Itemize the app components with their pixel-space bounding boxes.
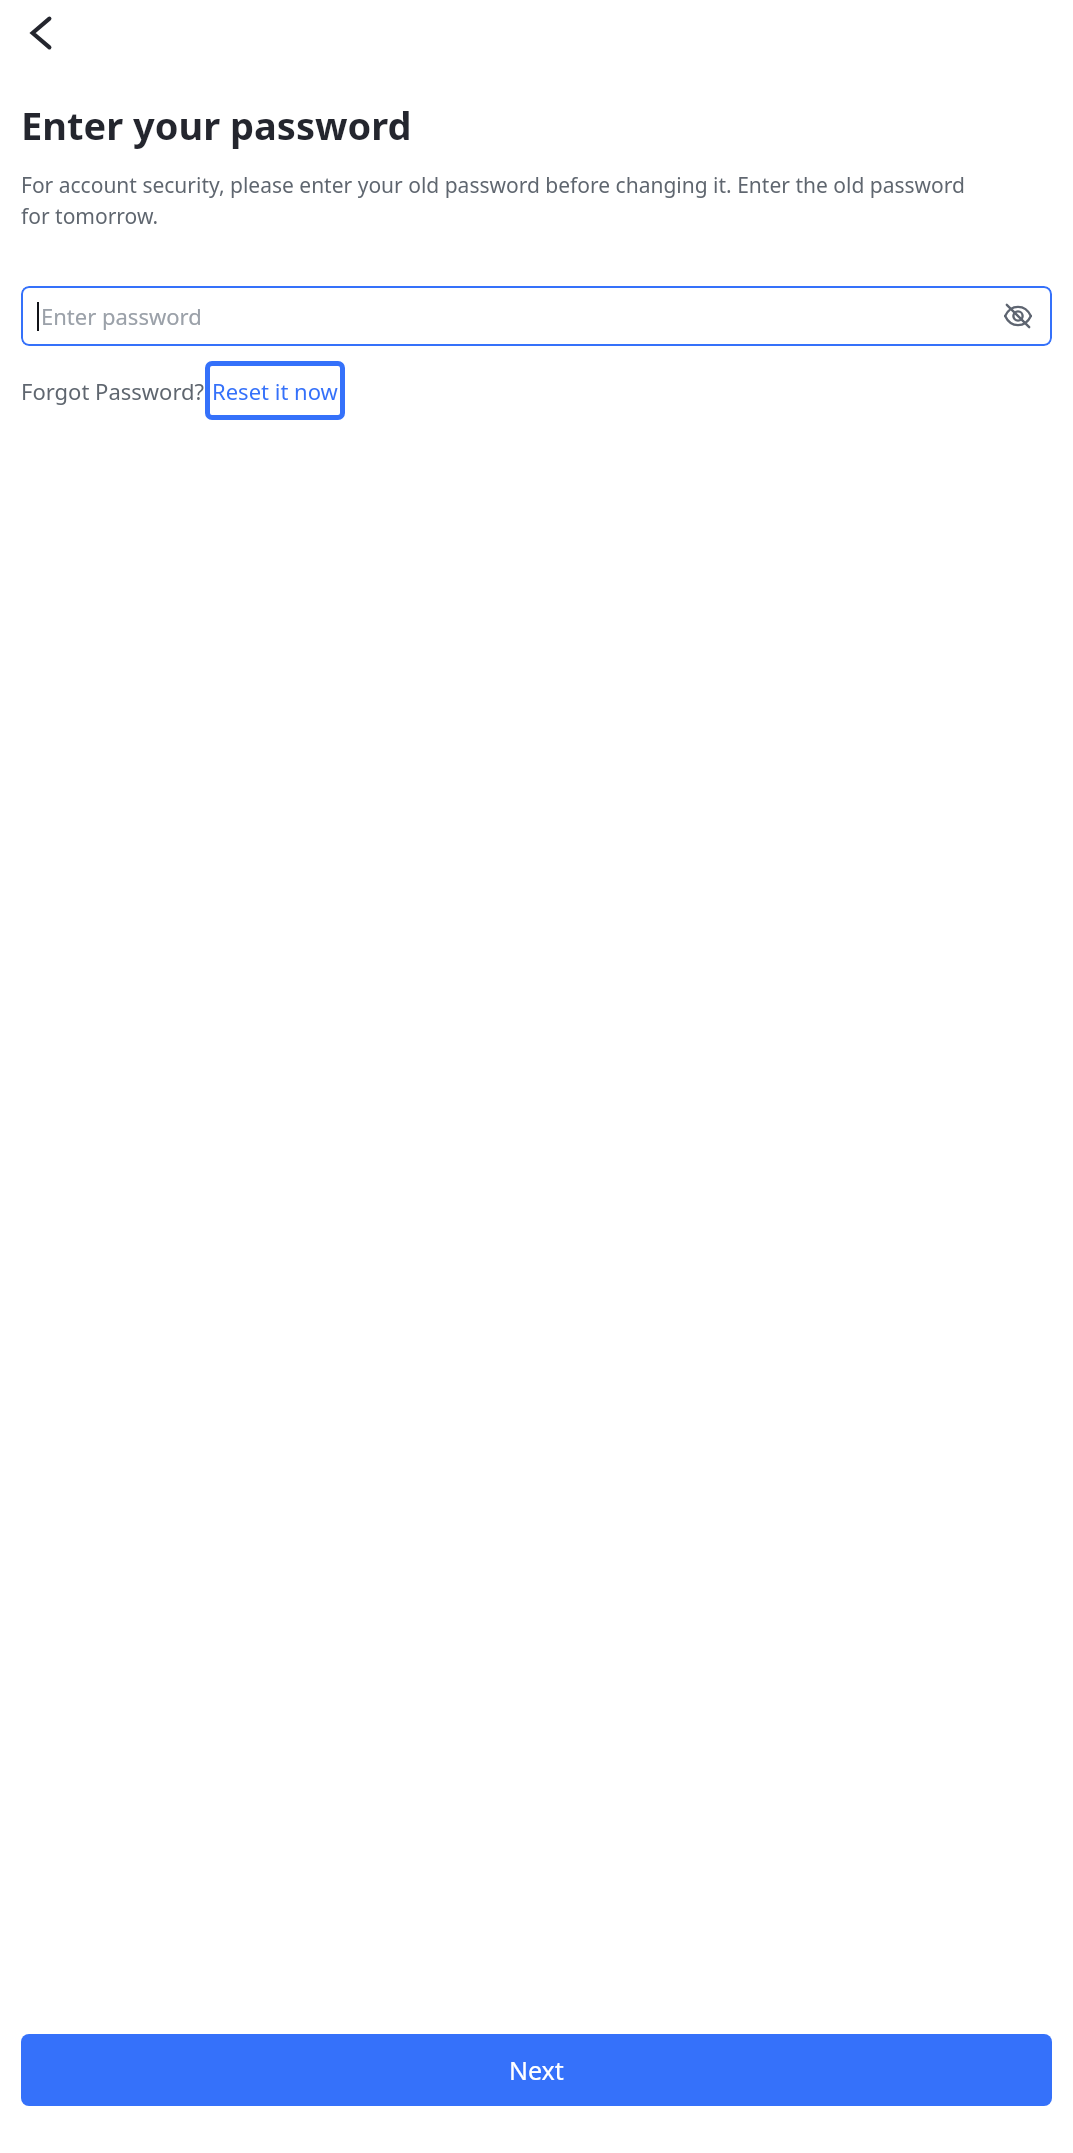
- button[interactable]: Show password: [1002, 300, 1034, 332]
- staticText: Next: [509, 2053, 564, 2087]
- button[interactable]: Enter password: [21, 286, 1052, 346]
- staticText: Forgot Password?: [21, 376, 205, 406]
- button[interactable]: Reset it now: [205, 361, 345, 420]
- staticText: Reset it now: [212, 376, 338, 406]
- staticText: Enter password: [41, 301, 202, 331]
- staticText: Enter your password: [21, 99, 412, 151]
- button[interactable]: Back: [13, 5, 69, 61]
- button[interactable]: Next: [21, 2034, 1052, 2106]
- staticText: For account security, please enter your …: [21, 171, 973, 230]
